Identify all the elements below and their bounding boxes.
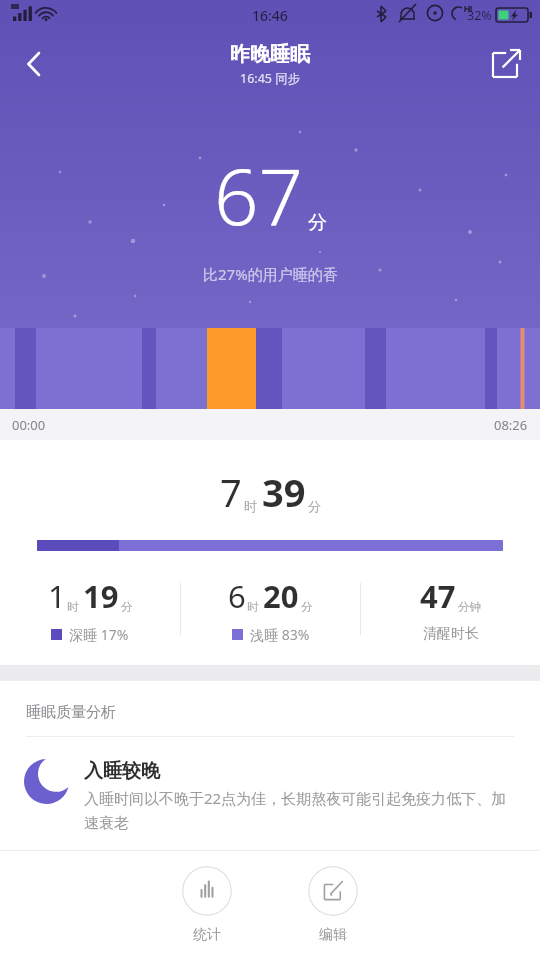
staticText: 32% (467, 7, 492, 24)
staticText: 编辑 (319, 926, 347, 944)
staticText: 08:26 (494, 416, 528, 434)
staticText: 分 (121, 600, 133, 614)
staticText: 67 (214, 142, 304, 248)
staticText: 入睡较晚 (84, 759, 160, 783)
button[interactable]: 6 (181, 575, 360, 643)
staticText: 20 (263, 575, 299, 617)
staticText: 分 (301, 600, 313, 614)
staticText: 清醒时长 (423, 625, 479, 643)
staticText: 1 (48, 575, 66, 617)
staticText: 00:00 (12, 416, 46, 434)
staticText: 分 (308, 211, 327, 235)
staticText: 昨晚睡眠 (230, 42, 310, 67)
staticText: 时 (247, 600, 259, 614)
staticText: 浅睡 83% (250, 625, 310, 643)
button[interactable]: 编辑 (288, 854, 378, 944)
staticText: 统计 (193, 926, 221, 944)
staticText: 时 (244, 498, 257, 514)
button[interactable]: 统计 (162, 854, 252, 944)
staticText: 入睡时间以不晚于22点为佳，长期熬夜可能引起免疫力低下、加速衰老 (84, 788, 518, 832)
staticText: 6 (228, 575, 246, 617)
button[interactable]: 分享 (482, 41, 528, 87)
button[interactable]: 1 (0, 575, 180, 643)
staticText: 16:46 (252, 6, 288, 25)
staticText: 时 (67, 600, 79, 614)
staticText: 7 (220, 466, 242, 518)
staticText: 睡眠质量分析 (26, 703, 116, 722)
button[interactable]: 返回 (10, 40, 58, 88)
staticText: 47 (420, 575, 456, 617)
staticText: 19 (83, 575, 119, 617)
button[interactable]: 47 (361, 575, 540, 643)
staticText: 39 (262, 466, 306, 518)
button[interactable]: 入睡较晚 (0, 737, 540, 850)
staticText: 分钟 (458, 600, 481, 614)
staticText: 深睡 17% (69, 625, 129, 643)
staticText: 分 (308, 498, 321, 514)
staticText: 比27%的用户睡的香 (203, 264, 338, 284)
staticText: 16:45 同步 (240, 70, 301, 87)
